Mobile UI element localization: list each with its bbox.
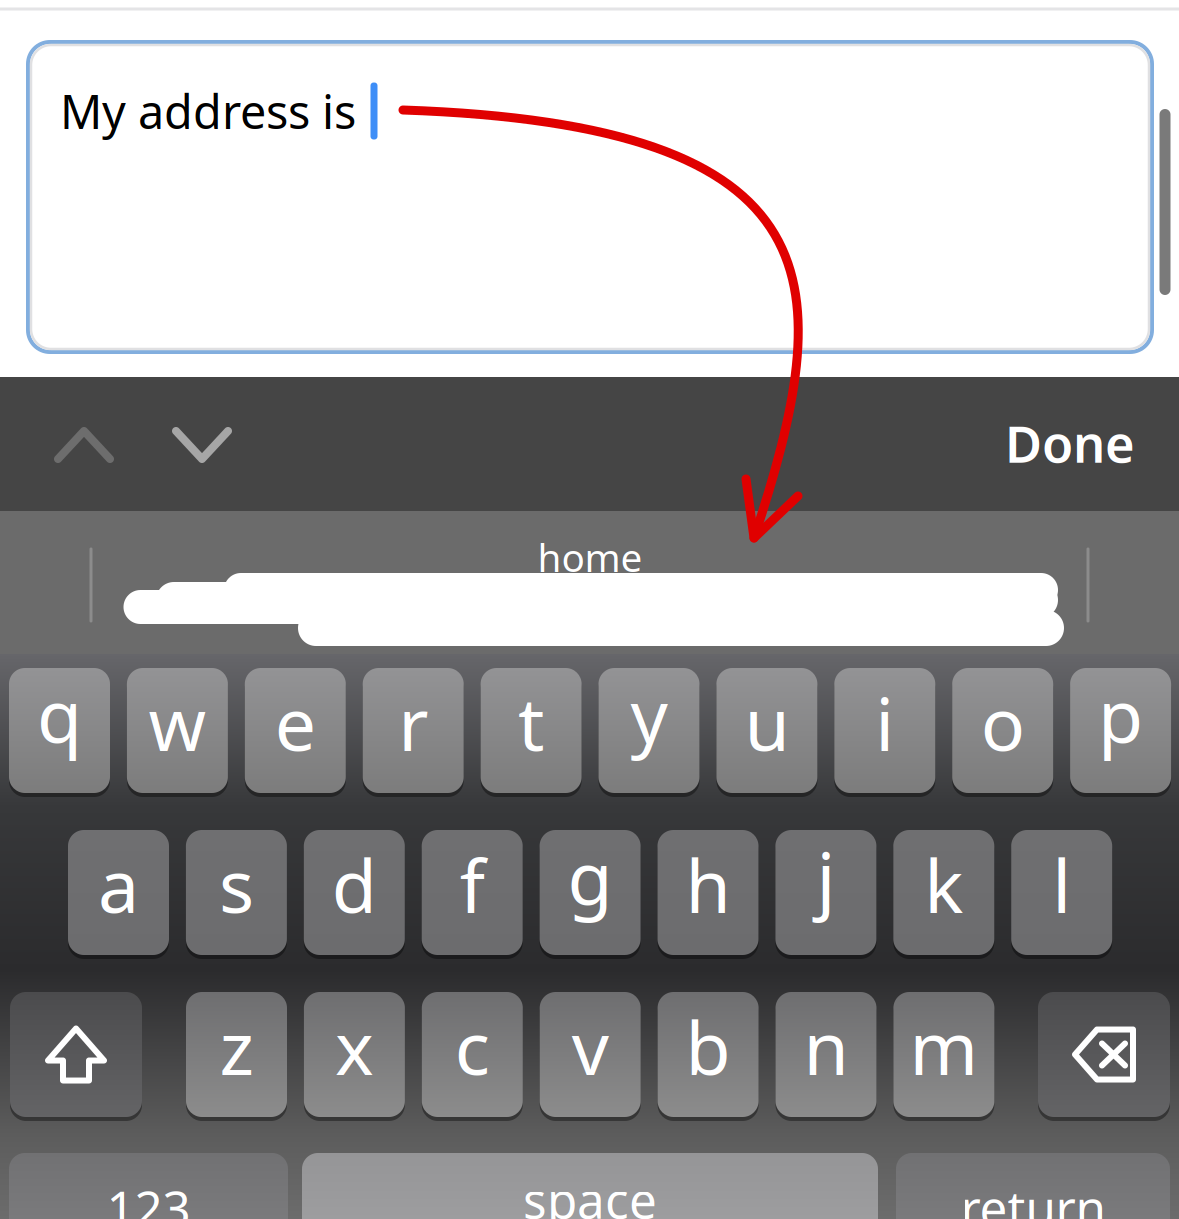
staticText: x: [335, 998, 374, 1095]
button[interactable]: a: [68, 830, 169, 955]
button[interactable]: o: [952, 668, 1053, 793]
staticText: s: [219, 836, 254, 933]
staticText: i: [875, 674, 894, 771]
button[interactable]: n: [775, 992, 876, 1117]
button[interactable]: g: [540, 830, 641, 955]
button[interactable]: i: [834, 668, 935, 793]
button[interactable]: q: [9, 668, 110, 793]
button[interactable]: Done: [970, 388, 1170, 498]
button[interactable]: j: [775, 830, 876, 955]
button[interactable]: Shift: [10, 992, 142, 1117]
staticText: z: [219, 998, 253, 1095]
staticText: l: [1052, 836, 1071, 933]
staticText: 123: [106, 1175, 190, 1219]
button[interactable]: u: [716, 668, 817, 793]
button[interactable]: p: [1070, 668, 1171, 793]
staticText: m: [909, 998, 978, 1095]
button[interactable]: return: [896, 1153, 1170, 1219]
staticText: t: [518, 674, 544, 771]
staticText: f: [460, 836, 485, 933]
staticText: My address is: [60, 80, 356, 142]
button[interactable]: y: [598, 668, 699, 793]
button[interactable]: Previous field: [24, 390, 144, 500]
button[interactable]: b: [658, 992, 759, 1117]
button[interactable]: x: [304, 992, 405, 1117]
staticText: return: [960, 1175, 1105, 1219]
staticText: u: [744, 674, 789, 771]
staticText: n: [803, 998, 848, 1095]
staticText: q: [37, 666, 82, 763]
staticText: w: [148, 674, 206, 771]
button[interactable]: z: [186, 992, 287, 1117]
staticText: a: [98, 836, 139, 933]
staticText: c: [455, 998, 490, 1095]
staticText: h: [685, 836, 730, 933]
button[interactable]: e: [245, 668, 346, 793]
staticText: d: [332, 836, 377, 933]
button[interactable]: 123: [9, 1153, 288, 1219]
staticText: home: [537, 531, 642, 583]
button[interactable]: m: [893, 992, 994, 1117]
staticText: j: [816, 828, 835, 925]
staticText: Done: [1005, 409, 1135, 477]
button[interactable]: r: [363, 668, 464, 793]
staticText: space: [523, 1167, 657, 1219]
button[interactable]: Delete: [1038, 992, 1170, 1117]
button[interactable]: d: [304, 830, 405, 955]
button[interactable]: h: [657, 830, 758, 955]
staticText: r: [398, 674, 428, 771]
staticText: v: [572, 998, 609, 1095]
staticText: b: [686, 998, 731, 1095]
button[interactable]: w: [127, 668, 228, 793]
button[interactable]: c: [422, 992, 523, 1117]
staticText: o: [981, 674, 1025, 771]
button[interactable]: k: [893, 830, 994, 955]
button[interactable]: s: [186, 830, 287, 955]
staticText: e: [275, 674, 316, 771]
staticText: g: [568, 828, 613, 925]
button[interactable]: space: [302, 1153, 878, 1219]
button[interactable]: Next field: [142, 390, 262, 500]
staticText: k: [924, 836, 963, 933]
staticText: p: [1098, 666, 1143, 763]
button[interactable]: f: [422, 830, 523, 955]
button[interactable]: t: [481, 668, 582, 793]
staticText: y: [630, 666, 667, 763]
button[interactable]: l: [1011, 830, 1112, 955]
button[interactable]: v: [540, 992, 641, 1117]
